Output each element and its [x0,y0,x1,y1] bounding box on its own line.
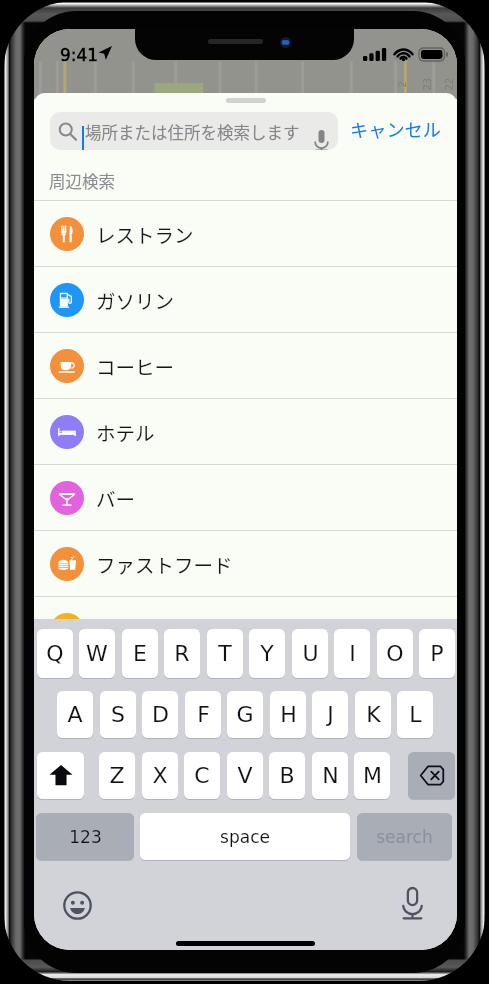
staticText: C [194,763,210,789]
staticText: A [67,702,83,728]
button[interactable]: 場所または住所を検索します [50,112,338,150]
button[interactable]: M [354,752,390,799]
staticText: E [133,641,147,667]
button[interactable]: レストラン [34,201,457,266]
button[interactable] [408,752,455,799]
button[interactable]: O [377,629,413,678]
staticText: T [218,641,232,667]
staticText: W [86,641,108,667]
staticText: Z [109,763,125,789]
staticText: N [322,763,339,789]
button[interactable]: バー [34,465,457,530]
button[interactable]: A [57,691,93,738]
staticText: S [111,702,125,728]
staticText: Y [260,641,274,667]
button[interactable]: P [419,629,455,678]
button[interactable]: search [357,813,452,860]
button[interactable]: C [184,752,220,799]
staticText: ガソリン [96,286,175,314]
button[interactable]: R [164,629,200,678]
staticText: 23 [421,77,433,90]
staticText: space [220,827,270,847]
staticText: コーヒー [96,352,175,380]
button[interactable]: space [140,813,350,860]
button[interactable]: コーヒー [34,333,457,398]
button[interactable]: キャンセル [347,110,438,148]
staticText: M [363,763,382,789]
button[interactable]: B [269,752,305,799]
button[interactable]: X [142,752,178,799]
button[interactable]: J [312,691,348,738]
staticText: 周辺検索 [49,169,115,193]
staticText: ホテル [96,418,155,446]
staticText: V [237,763,253,789]
button[interactable]: N [312,752,348,799]
button[interactable]: G [227,691,263,738]
button[interactable]: Dictation [395,886,429,920]
staticText: U [302,641,319,667]
staticText: レストラン [96,220,194,248]
staticText: O [386,641,404,667]
staticText: X [152,763,168,789]
button[interactable]: ファストフード [34,531,457,596]
button[interactable]: ホテル [34,399,457,464]
button[interactable]: Emoji keyboard [60,888,94,922]
staticText: 場所または住所を検索します [85,120,300,144]
staticText: ショッピング [96,616,214,620]
staticText: J [327,702,334,728]
staticText: H [280,702,297,728]
staticText: search [376,827,433,847]
staticText: L [409,702,422,728]
staticText: K [366,702,381,728]
button[interactable]: I [334,629,370,678]
button[interactable]: U [292,629,328,678]
button[interactable]: S [100,691,136,738]
button[interactable] [37,752,84,799]
button[interactable]: Q [37,629,73,678]
staticText: バー [96,484,136,512]
button[interactable]: T [207,629,243,678]
staticText: 9:41 [60,45,99,65]
staticText: P [430,641,444,667]
button[interactable]: L [397,691,433,738]
button[interactable]: D [142,691,178,738]
staticText: Q [46,641,64,667]
button[interactable]: Y [249,629,285,678]
staticText: F [197,702,210,728]
button[interactable]: V [227,752,263,799]
staticText: ファストフード [96,550,233,578]
button[interactable]: ガソリン [34,267,457,332]
button[interactable]: F [185,691,221,738]
button[interactable]: E [122,629,158,678]
button[interactable]: ショッピング [34,597,457,620]
staticText: 123 [69,827,102,847]
button[interactable]: K [355,691,391,738]
staticText: I [349,641,356,667]
staticText: D [152,702,169,728]
button[interactable]: Z [99,752,135,799]
button[interactable]: H [270,691,306,738]
button[interactable]: W [79,629,115,678]
staticText: R [174,641,190,667]
staticText: G [236,702,254,728]
staticText: 2 [396,80,408,87]
staticText: 22 [443,77,455,90]
staticText: B [279,763,295,789]
button[interactable]: 123 [36,813,134,860]
staticText: キャンセル [350,116,441,142]
